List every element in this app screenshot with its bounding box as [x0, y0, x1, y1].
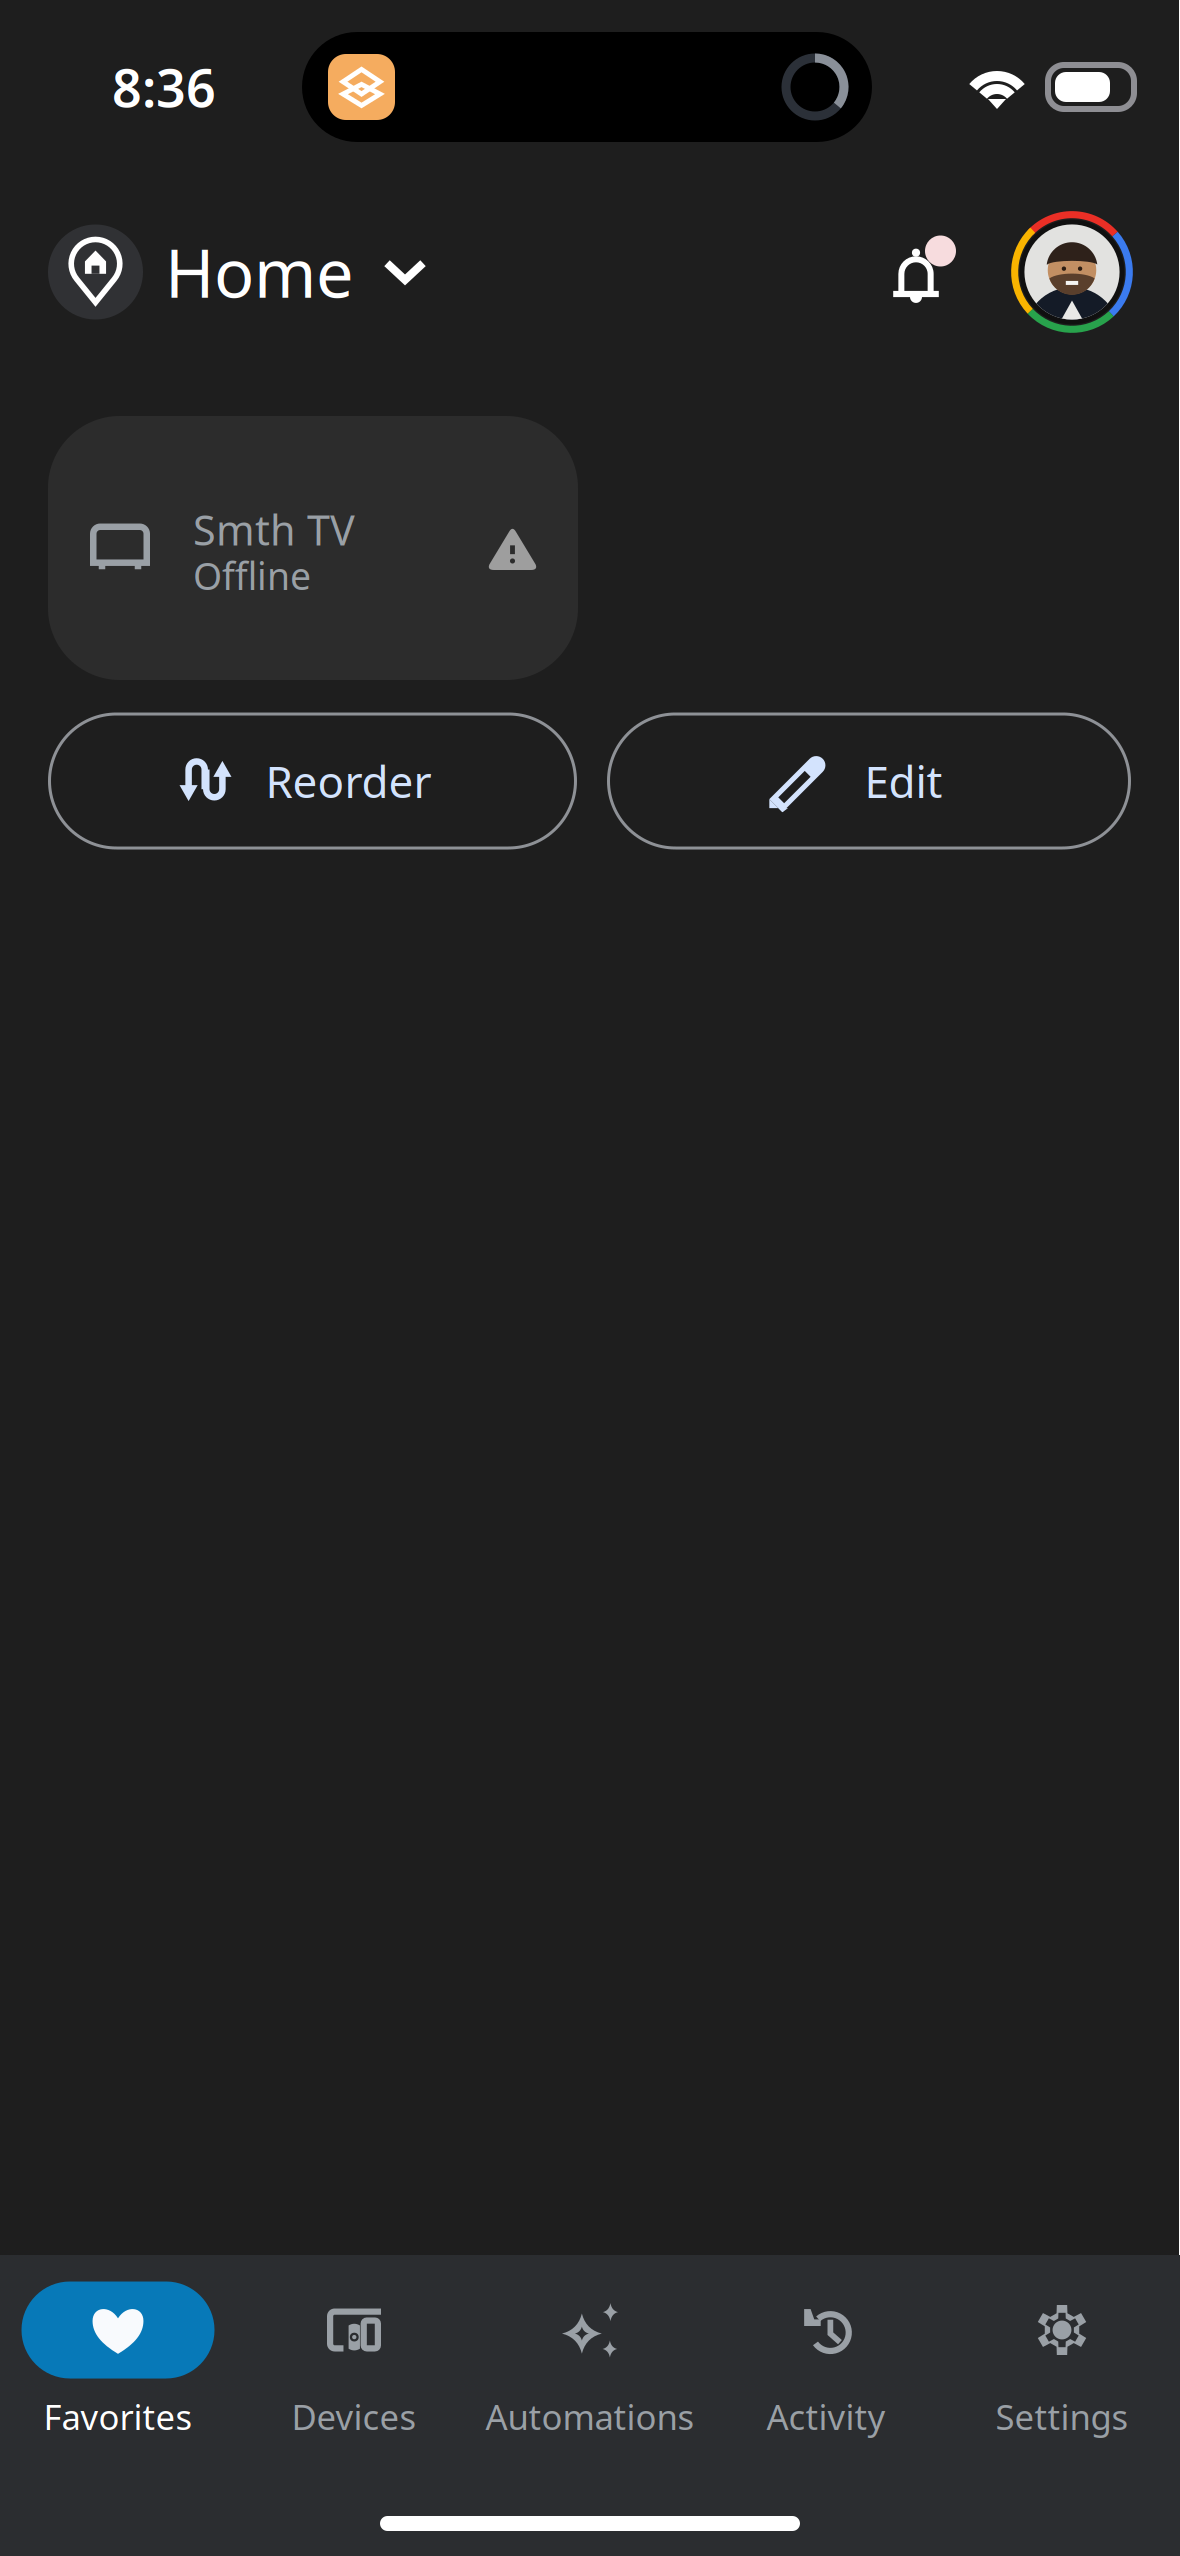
staticText: Settings	[995, 2393, 1128, 2439]
staticText: Activity	[766, 2393, 885, 2439]
staticText: Smth TV	[193, 502, 355, 557]
button[interactable]: Favorites	[0, 2287, 236, 2433]
button[interactable]: Devices	[236, 2287, 472, 2433]
button[interactable]: Home	[48, 224, 427, 319]
button[interactable]: Activity	[708, 2287, 944, 2433]
button[interactable]: Edit	[608, 714, 1129, 848]
button[interactable]: Smth TV	[48, 416, 578, 680]
button[interactable]: Notifications	[892, 235, 958, 308]
staticText: 8:36	[112, 52, 216, 122]
staticText: Reorder	[265, 752, 431, 810]
staticText: Home	[165, 228, 354, 316]
button[interactable]: Automations	[472, 2287, 708, 2433]
staticText: Devices	[291, 2393, 416, 2439]
staticText: Favorites	[43, 2393, 192, 2439]
staticText: Offline	[193, 551, 311, 600]
button[interactable]: Reorder	[49, 714, 575, 848]
button[interactable]: Account	[1011, 211, 1133, 333]
staticText: Automations	[485, 2393, 694, 2439]
staticText: Edit	[864, 752, 942, 810]
button[interactable]: Settings	[944, 2287, 1180, 2433]
